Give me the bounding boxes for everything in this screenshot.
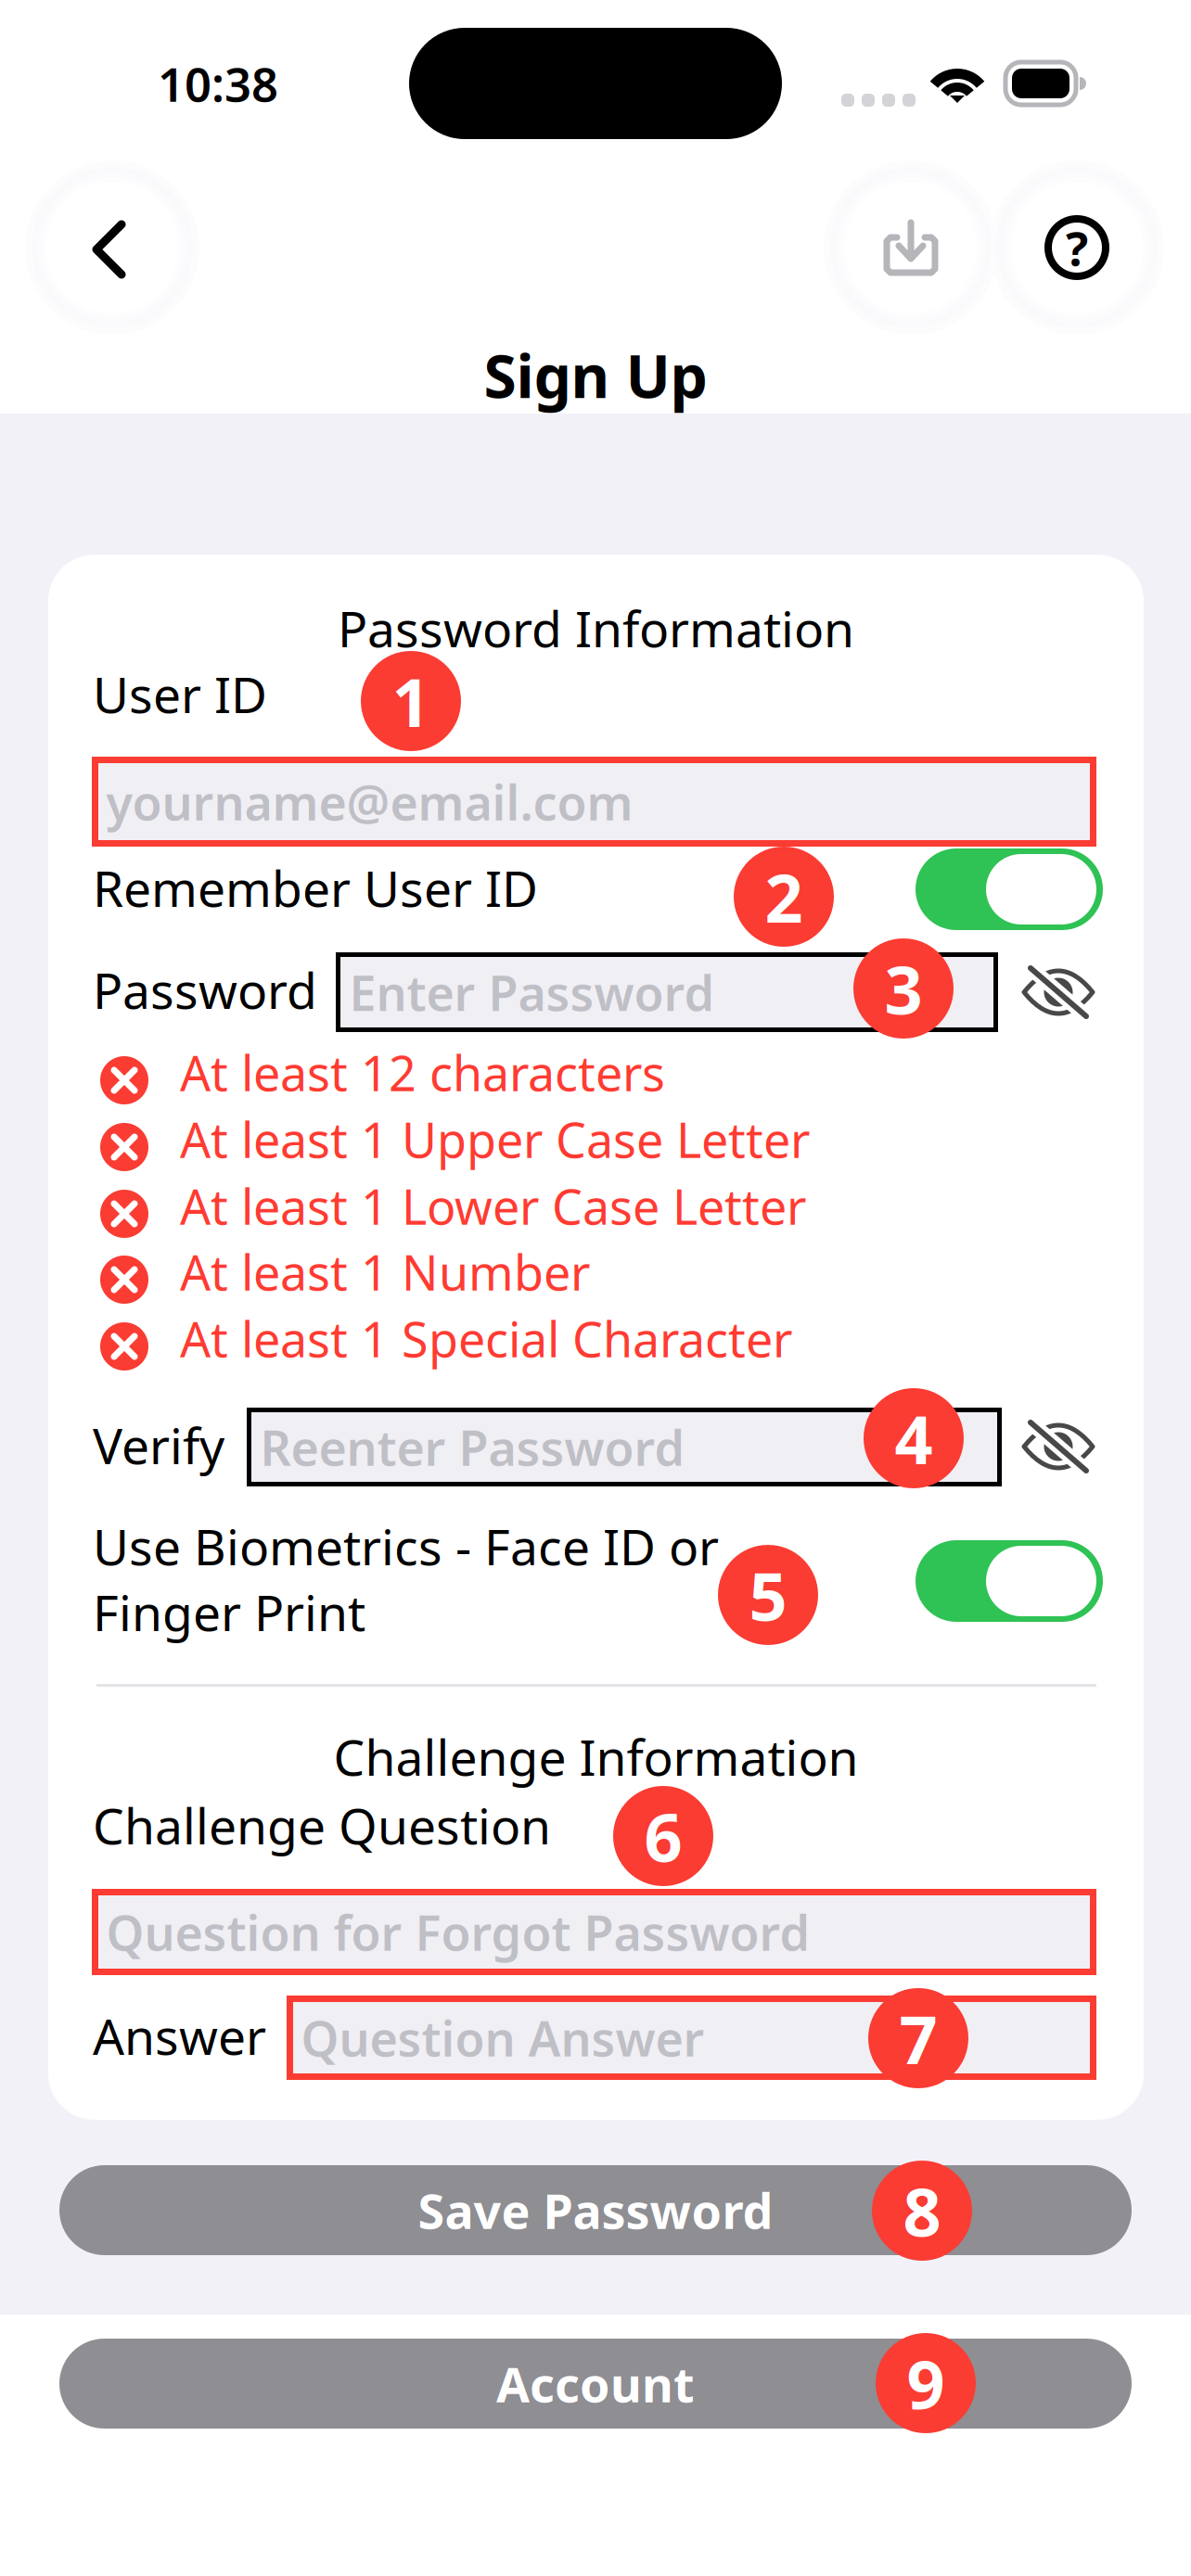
button[interactable]: Show password bbox=[1021, 966, 1095, 1018]
staticText: Enter Password bbox=[349, 960, 715, 1024]
staticText: Question Answer bbox=[301, 2006, 704, 2070]
staticText: At least 1 Special Character bbox=[180, 1307, 792, 1371]
staticText: Password bbox=[93, 957, 317, 1023]
staticText: ? bbox=[1066, 216, 1088, 279]
button[interactable]: Save bbox=[824, 160, 998, 335]
staticText: yourname@email.com bbox=[106, 770, 633, 834]
staticText: 9 bbox=[907, 2339, 945, 2427]
staticText: 2 bbox=[765, 852, 803, 941]
staticText: Verify bbox=[93, 1412, 224, 1478]
button[interactable]: Save Password bbox=[59, 2165, 1132, 2255]
button[interactable]: Back bbox=[25, 160, 199, 335]
button[interactable]: yourname@email.com bbox=[95, 760, 1093, 843]
staticText: Password Information bbox=[338, 595, 854, 661]
staticText: 5 bbox=[749, 1551, 787, 1639]
button[interactable]: Remember User ID bbox=[916, 848, 1103, 930]
staticText: 7 bbox=[899, 1994, 937, 2082]
button[interactable]: Question Answer bbox=[290, 1999, 1093, 2077]
staticText: Challenge Information bbox=[333, 1724, 858, 1789]
staticText: Use Biometrics - Face ID or Finger Print bbox=[93, 1513, 719, 1645]
staticText: Question for Forgot Password bbox=[106, 1900, 810, 1964]
staticText: Answer bbox=[93, 2003, 266, 2069]
staticText: Challenge Question bbox=[93, 1792, 551, 1858]
button[interactable]: Show password bbox=[1021, 1421, 1095, 1473]
button[interactable]: Use Biometrics bbox=[916, 1540, 1103, 1622]
staticText: Remember User ID bbox=[93, 855, 538, 921]
button[interactable]: Question for Forgot Password bbox=[95, 1892, 1093, 1972]
staticText: Reenter Password bbox=[260, 1415, 685, 1479]
staticText: At least 12 characters bbox=[180, 1040, 665, 1104]
staticText: User ID bbox=[93, 661, 267, 727]
button[interactable]: Enter Password bbox=[338, 955, 996, 1030]
staticText: Save Password bbox=[418, 2178, 773, 2242]
staticText: Account bbox=[496, 2352, 695, 2416]
staticText: 6 bbox=[644, 1792, 682, 1880]
staticText: 3 bbox=[884, 944, 922, 1033]
staticText: At least 1 Upper Case Letter bbox=[180, 1107, 810, 1171]
staticText: At least 1 Number bbox=[180, 1240, 590, 1304]
staticText: Sign Up bbox=[484, 336, 707, 414]
staticText: 10:38 bbox=[158, 52, 278, 115]
button[interactable]: Reenter Password bbox=[249, 1410, 999, 1484]
staticText: 1 bbox=[392, 657, 430, 745]
button[interactable]: Help bbox=[990, 160, 1164, 335]
staticText: 4 bbox=[895, 1394, 933, 1483]
button[interactable]: Account bbox=[59, 2339, 1132, 2429]
staticText: 8 bbox=[903, 2166, 941, 2255]
staticText: At least 1 Lower Case Letter bbox=[180, 1174, 806, 1238]
